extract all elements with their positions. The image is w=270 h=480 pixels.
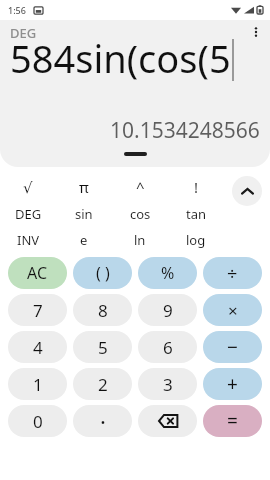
staticText: ( ) [96, 262, 110, 284]
button[interactable]: √ [0, 173, 56, 201]
staticText: log [186, 231, 206, 249]
staticText: 1:56 [8, 4, 26, 16]
staticText: √ [23, 179, 33, 196]
button[interactable]: − [203, 331, 262, 363]
button[interactable]: ! [168, 173, 224, 201]
button[interactable]: e [56, 227, 112, 253]
button[interactable]: ( ) [73, 257, 132, 289]
button[interactable]: 9 [138, 294, 197, 326]
button[interactable]: log [168, 227, 224, 253]
button[interactable]: DEG [0, 201, 56, 227]
staticText: · [100, 406, 106, 436]
button[interactable]: π [56, 173, 112, 201]
staticText: ÷ [227, 261, 238, 286]
button[interactable]: 2 [73, 368, 132, 400]
button[interactable]: × [203, 294, 262, 326]
button[interactable]: 7 [8, 294, 67, 326]
staticText: 2 [98, 373, 108, 396]
button[interactable]: 6 [138, 331, 197, 363]
button[interactable]: ÷ [203, 257, 262, 289]
staticText: 6 [163, 336, 173, 359]
staticText: 9 [163, 299, 173, 322]
button[interactable]: 5 [73, 331, 132, 363]
staticText: ! [194, 177, 199, 197]
staticText: 4 [33, 336, 43, 359]
button[interactable]: 0 [8, 405, 67, 437]
button[interactable]: sin [56, 201, 112, 227]
staticText: DEG [15, 205, 42, 223]
button[interactable]: 8 [73, 294, 132, 326]
staticText: ln [134, 231, 146, 249]
staticText: tan [186, 205, 207, 223]
staticText: DEG [10, 24, 37, 42]
staticText: × [228, 299, 238, 322]
button[interactable]: AC [8, 257, 67, 289]
button[interactable]: More options [245, 21, 267, 43]
staticText: − [227, 334, 238, 360]
button[interactable]: Backspace [138, 405, 197, 437]
button[interactable]: cos [112, 201, 168, 227]
staticText: + [227, 371, 238, 397]
button[interactable]: Collapse scientific keypad [232, 176, 262, 206]
staticText: 3 [163, 373, 173, 396]
staticText: 5 [98, 336, 108, 359]
staticText: INV [17, 231, 40, 249]
staticText: ^ [136, 177, 145, 197]
button[interactable]: ^ [112, 173, 168, 201]
button[interactable]: Collapse display [124, 152, 147, 156]
staticText: π [79, 177, 89, 197]
button[interactable]: · [73, 405, 132, 437]
button[interactable]: 3 [138, 368, 197, 400]
staticText: 7 [33, 299, 43, 322]
staticText: 8 [98, 299, 108, 322]
button[interactable]: 4 [8, 331, 67, 363]
button[interactable]: ln [112, 227, 168, 253]
staticText: cos [130, 205, 151, 223]
button[interactable]: 1 [8, 368, 67, 400]
staticText: e [80, 231, 88, 249]
staticText: AC [27, 262, 48, 284]
button[interactable]: INV [0, 227, 56, 253]
staticText: % [161, 262, 175, 284]
staticText: 584sin(cos(5 [10, 32, 231, 84]
staticText: 10.1534248566 [110, 116, 260, 145]
button[interactable]: + [203, 368, 262, 400]
staticText: = [227, 408, 238, 434]
staticText: 1 [33, 373, 43, 396]
button[interactable]: % [138, 257, 197, 289]
button[interactable]: tan [168, 201, 224, 227]
staticText: sin [75, 205, 93, 223]
staticText: 0 [33, 410, 43, 433]
button[interactable]: = [203, 405, 262, 437]
